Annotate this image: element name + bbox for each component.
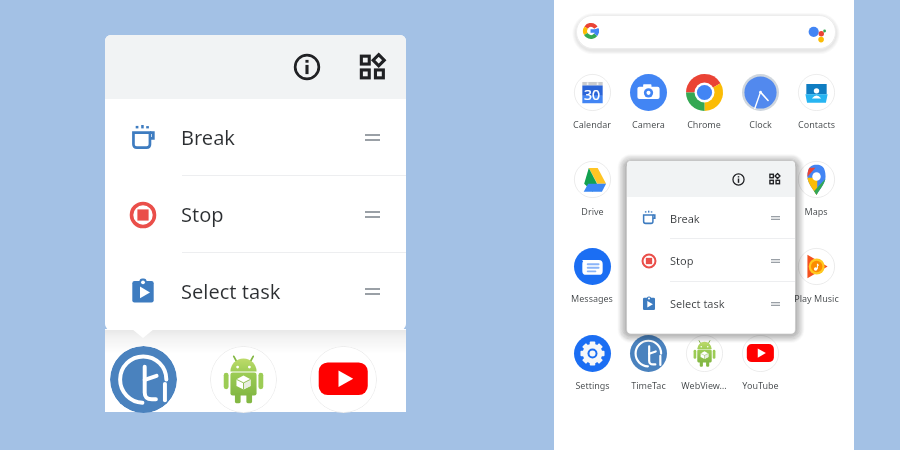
staticText: Chrome (687, 118, 721, 130)
button[interactable]: Select task (627, 282, 795, 325)
staticText: Maps (804, 205, 828, 217)
button[interactable]: Google search (576, 15, 836, 49)
button[interactable]: WebView… (676, 335, 732, 391)
button[interactable]: Widgets (764, 168, 786, 190)
button[interactable]: Chrome (676, 74, 732, 130)
staticText: Stop (181, 201, 224, 228)
button[interactable]: TimeTac (620, 335, 676, 391)
button[interactable]: Drive (564, 161, 620, 217)
staticText: Select task (181, 278, 281, 305)
button[interactable]: Android System WebView (210, 346, 277, 413)
button[interactable]: Settings (564, 335, 620, 391)
staticText: TimeTac (631, 379, 666, 391)
button[interactable]: Break (105, 99, 406, 176)
button[interactable]: Messages (564, 248, 620, 304)
button[interactable]: Contacts (788, 74, 844, 130)
staticText: Camera (632, 118, 665, 130)
button[interactable]: Break (627, 197, 795, 239)
staticText: Messages (571, 292, 613, 304)
staticText: Drive (581, 205, 604, 217)
staticText: Settings (575, 379, 610, 391)
staticText: Clock (749, 118, 772, 130)
staticText: Break (670, 211, 700, 226)
button[interactable]: YouTube (310, 346, 377, 413)
button[interactable]: 30 (564, 74, 620, 130)
staticText: Select task (670, 296, 725, 311)
button[interactable]: YouTube (732, 335, 788, 391)
staticText: YouTube (742, 379, 779, 391)
button[interactable]: Stop (105, 176, 406, 253)
button[interactable]: App info (287, 47, 327, 87)
button[interactable]: Maps (788, 161, 844, 217)
staticText: Contacts (798, 118, 835, 130)
button[interactable]: TimeTac (110, 346, 177, 413)
staticText: Break (181, 124, 236, 151)
button[interactable]: Clock (732, 74, 788, 130)
staticText: Stop (670, 253, 694, 268)
staticText: WebView… (681, 379, 727, 391)
staticText: Play Music (794, 292, 839, 304)
button[interactable]: Play Music (788, 248, 844, 304)
button[interactable]: Camera (620, 74, 676, 130)
button[interactable]: App info (727, 168, 749, 190)
button[interactable]: Widgets (353, 47, 393, 87)
staticText: Calendar (573, 118, 611, 130)
staticText: 30 (584, 85, 601, 104)
button[interactable]: Select task (105, 253, 406, 330)
button[interactable]: Stop (627, 239, 795, 282)
